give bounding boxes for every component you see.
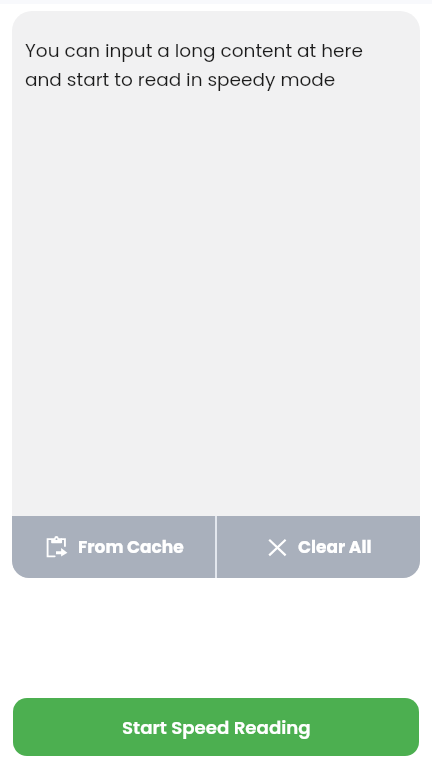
staticText: Start Speed Reading (122, 715, 311, 740)
button[interactable]: From Cache (12, 516, 215, 578)
button[interactable]: Start Speed Reading (13, 698, 419, 756)
staticText: You can input a long content at here and… (25, 38, 398, 516)
other: Clear All (266, 538, 285, 557)
other: From Cache (43, 536, 66, 559)
button[interactable]: Clear All (217, 516, 420, 578)
staticText: From Cache (78, 535, 184, 559)
staticText: Clear All (298, 535, 372, 559)
